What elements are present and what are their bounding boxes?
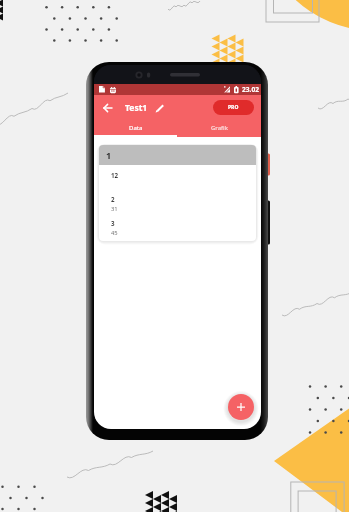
button[interactable]: Back [98, 99, 116, 117]
staticText: Test1 [125, 102, 148, 114]
staticText: 3 [111, 219, 115, 227]
button[interactable]: 1 [99, 145, 256, 165]
staticText: Grafik [211, 124, 228, 132]
staticText: 1 [106, 149, 112, 161]
staticText: 45 [111, 229, 118, 237]
button[interactable]: PRO [213, 100, 254, 115]
staticText: Data [129, 124, 143, 132]
staticText: PRO [228, 104, 239, 111]
staticText: 23.02 [242, 85, 259, 94]
button[interactable]: Edit [153, 102, 165, 114]
button[interactable]: 3 [99, 213, 256, 237]
button[interactable]: Add [228, 394, 254, 420]
staticText: 2 [111, 195, 115, 203]
staticText: 31 [111, 205, 118, 213]
button[interactable]: Data [94, 120, 177, 135]
button[interactable]: 2 [99, 189, 256, 213]
button[interactable]: Grafik [177, 120, 261, 135]
button[interactable]: 12 [99, 165, 256, 189]
staticText: 12 [111, 171, 119, 179]
